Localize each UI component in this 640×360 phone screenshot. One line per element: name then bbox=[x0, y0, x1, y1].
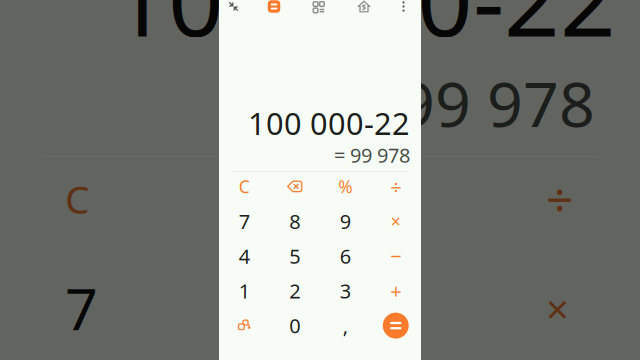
staticText: + bbox=[390, 277, 401, 304]
button[interactable]: 9 bbox=[320, 204, 370, 239]
button[interactable]: 5 bbox=[269, 239, 320, 273]
staticText: 0 bbox=[289, 312, 300, 339]
staticText: % bbox=[338, 175, 352, 198]
button[interactable]: Calculator bbox=[248, 0, 300, 13]
button[interactable]: 2 bbox=[269, 273, 320, 308]
button[interactable]: Collapse bbox=[219, 0, 248, 13]
button[interactable]: 1 bbox=[219, 273, 269, 308]
staticText: − bbox=[390, 243, 401, 269]
staticText: C bbox=[65, 173, 89, 224]
staticText: 3 bbox=[340, 277, 351, 304]
button[interactable]: Unit converter bbox=[219, 308, 269, 343]
button[interactable]: More options bbox=[392, 0, 415, 13]
staticText: 4 bbox=[239, 243, 250, 269]
staticText: × bbox=[546, 282, 569, 335]
button[interactable]: Equals bbox=[370, 308, 421, 343]
button[interactable]: 4 bbox=[219, 239, 269, 273]
button[interactable]: + bbox=[370, 273, 421, 308]
button[interactable]: 7 bbox=[219, 204, 269, 239]
staticText: 7 bbox=[239, 208, 250, 234]
staticText: 9 bbox=[340, 208, 351, 234]
button[interactable]: Unit converter bbox=[300, 0, 336, 13]
button[interactable]: 8 bbox=[269, 204, 320, 239]
button[interactable]: 6 bbox=[320, 239, 370, 273]
button[interactable]: − bbox=[370, 239, 421, 273]
staticText: C bbox=[239, 175, 250, 198]
staticText: 5 bbox=[289, 243, 300, 269]
staticText: ÷ bbox=[390, 173, 401, 200]
button[interactable]: , bbox=[320, 308, 370, 343]
button[interactable]: % bbox=[320, 169, 370, 204]
staticText: 2 bbox=[289, 277, 300, 304]
button[interactable]: 0 bbox=[269, 308, 320, 343]
button[interactable]: C bbox=[219, 169, 269, 204]
staticText: × bbox=[391, 210, 401, 233]
staticText: 6 bbox=[340, 243, 351, 269]
staticText: , bbox=[343, 312, 348, 339]
button[interactable]: Loan calculator bbox=[336, 0, 392, 13]
staticText: ÷ bbox=[546, 167, 573, 231]
button[interactable]: ÷ bbox=[370, 169, 421, 204]
button[interactable]: Backspace bbox=[269, 169, 320, 204]
button[interactable]: × bbox=[370, 204, 421, 239]
staticText: = 99 978 bbox=[334, 142, 410, 168]
staticText: 1 bbox=[239, 277, 250, 304]
staticText: 8 bbox=[289, 208, 300, 234]
staticText: 100 000-22 bbox=[112, 0, 616, 63]
staticText: 100 000-22 bbox=[248, 103, 410, 143]
button[interactable]: 3 bbox=[320, 273, 370, 308]
staticText: = 99 978 bbox=[347, 61, 595, 144]
staticText: 7 bbox=[65, 270, 98, 346]
